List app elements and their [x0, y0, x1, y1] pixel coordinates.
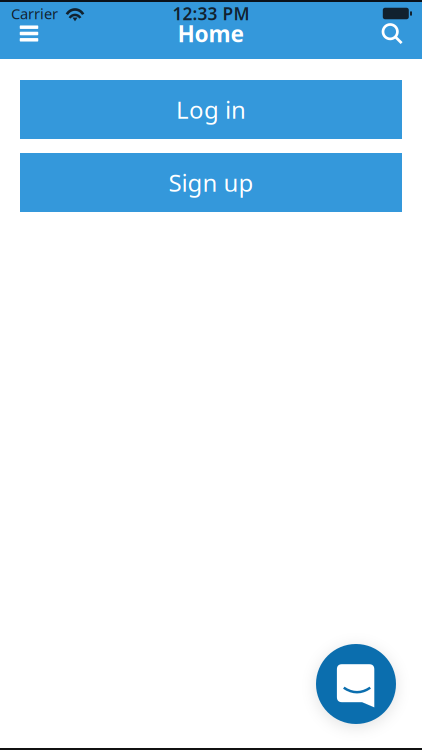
- staticText: Sign up: [168, 167, 253, 198]
- staticText: 12:33 PM: [172, 2, 249, 25]
- staticText: Home: [177, 18, 244, 48]
- button[interactable]: Open chat: [316, 644, 396, 724]
- button[interactable]: Search: [372, 22, 412, 45]
- button[interactable]: Menu: [9, 23, 49, 44]
- staticText: Carrier: [11, 4, 58, 23]
- staticText: Log in: [176, 94, 246, 125]
- button[interactable]: Log in: [20, 80, 402, 139]
- button[interactable]: Sign up: [20, 153, 402, 212]
